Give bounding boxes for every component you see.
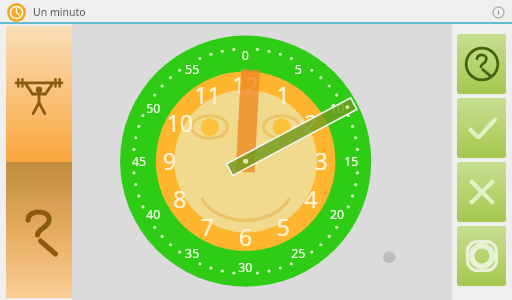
button[interactable]: Help: [457, 34, 506, 94]
button[interactable]: Exercise: [6, 26, 72, 162]
button[interactable]: Help: [6, 162, 72, 298]
button[interactable]: App icon: [7, 3, 26, 22]
button[interactable]: Accept: [457, 98, 506, 158]
staticText: Un minuto: [33, 5, 86, 19]
button[interactable]: Cancel: [457, 162, 506, 222]
button[interactable]: Support: [457, 226, 506, 286]
button[interactable]: Info: [492, 6, 505, 19]
